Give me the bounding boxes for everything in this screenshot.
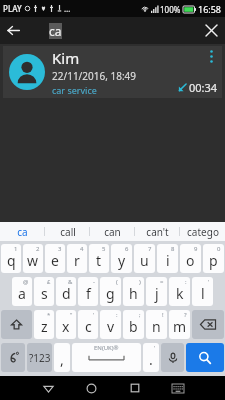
button[interactable]: "	[56, 310, 76, 339]
staticText: *	[47, 311, 51, 319]
button[interactable]: 3	[45, 244, 65, 273]
button[interactable]: (	[100, 277, 121, 306]
staticText: =	[160, 278, 164, 286]
button[interactable]: call	[45, 222, 90, 241]
button[interactable]: 7	[134, 244, 155, 273]
staticText: s	[41, 284, 48, 303]
button[interactable]: Space	[72, 343, 141, 372]
button[interactable]: £	[34, 277, 54, 306]
staticText: 5	[102, 245, 106, 253]
button[interactable]: Search	[186, 343, 224, 372]
staticText: i	[166, 251, 170, 270]
staticText: 22/11/2016, 18:49	[52, 69, 137, 83]
staticText: 2	[36, 245, 40, 253]
staticText: '	[154, 344, 156, 352]
staticText: (	[116, 278, 118, 286]
staticText: '	[93, 311, 95, 319]
button[interactable]: *	[34, 310, 54, 339]
staticText: '	[208, 278, 210, 286]
staticText: j	[155, 284, 159, 303]
staticText: q	[7, 251, 16, 270]
button[interactable]: 9	[180, 244, 201, 273]
button[interactable]: ?123	[27, 343, 52, 372]
button[interactable]: Kim	[3, 46, 222, 98]
button[interactable]: ca	[0, 222, 45, 241]
staticText: f	[86, 284, 91, 303]
staticText: c	[85, 317, 92, 336]
staticText: 8	[171, 245, 175, 253]
staticText: ca	[17, 225, 28, 239]
staticText: m	[173, 317, 187, 336]
button[interactable]: Home	[70, 376, 113, 400]
button[interactable]: ;	[123, 310, 144, 339]
button[interactable]: Back	[27, 376, 70, 400]
staticText: :	[116, 311, 118, 319]
staticText: w	[27, 251, 39, 270]
button[interactable]: Backspace	[192, 310, 224, 339]
staticText: b	[129, 317, 138, 336]
staticText: can't	[146, 225, 169, 239]
staticText: 16:58	[198, 3, 222, 15]
staticText: )	[139, 278, 141, 286]
button[interactable]: '	[143, 343, 159, 372]
staticText: can	[104, 225, 121, 239]
staticText: h	[129, 284, 138, 303]
button[interactable]: More options	[204, 46, 218, 66]
button[interactable]: 6	[111, 244, 132, 273]
staticText: 00:34	[189, 80, 218, 95]
staticText: o	[186, 251, 195, 270]
staticText: 4	[80, 245, 84, 253]
staticText: t	[96, 251, 102, 270]
staticText: :	[185, 278, 187, 286]
button[interactable]: can	[90, 222, 135, 241]
staticText: PLAY	[3, 3, 22, 14]
staticText: 1	[14, 245, 18, 253]
button[interactable]: =	[146, 277, 167, 306]
staticText: @	[23, 278, 29, 286]
button[interactable]: Hide keyboard	[156, 376, 199, 400]
button[interactable]: ,	[54, 343, 70, 372]
button[interactable]: !	[146, 310, 167, 339]
button[interactable]: :	[100, 310, 121, 339]
staticText: catego	[187, 225, 219, 239]
button[interactable]: ?	[169, 310, 190, 339]
staticText: e	[51, 251, 59, 270]
staticText: x	[62, 317, 70, 336]
staticText: v	[107, 317, 115, 336]
button[interactable]: '	[78, 310, 98, 339]
staticText: n	[152, 317, 161, 336]
button[interactable]: Voice input	[161, 343, 184, 372]
button[interactable]: -	[78, 277, 98, 306]
button[interactable]: '	[192, 277, 213, 306]
button[interactable]: 4	[67, 244, 87, 273]
button[interactable]: &	[56, 277, 76, 306]
staticText: l	[201, 284, 205, 303]
button[interactable]: @	[12, 277, 32, 306]
staticText: !	[162, 311, 164, 319]
button[interactable]: catego	[180, 222, 225, 241]
button[interactable]: 1	[1, 244, 21, 273]
button[interactable]: Handwriting	[1, 343, 25, 372]
staticText: -	[93, 278, 95, 286]
button[interactable]: can't	[135, 222, 180, 241]
button[interactable]: Recents	[113, 376, 156, 400]
staticText: "	[70, 311, 73, 319]
button[interactable]: 5	[89, 244, 109, 273]
button[interactable]: 2	[23, 244, 43, 273]
button[interactable]: Clear	[198, 17, 225, 44]
button[interactable]: Shift	[1, 310, 32, 339]
staticText: EN(UK)®	[94, 344, 119, 352]
staticText: k	[176, 284, 184, 303]
staticText: ?	[184, 311, 187, 319]
staticText: &	[68, 278, 73, 286]
staticText: z	[41, 317, 48, 336]
button[interactable]: 0	[203, 244, 224, 273]
button[interactable]: )	[123, 277, 144, 306]
staticText: 3	[58, 245, 62, 253]
staticText: car service	[52, 84, 97, 96]
staticText: 0	[217, 245, 221, 253]
button[interactable]: Back	[0, 17, 27, 44]
button[interactable]: :	[169, 277, 190, 306]
staticText: y	[118, 251, 126, 270]
button[interactable]: 8	[157, 244, 178, 273]
